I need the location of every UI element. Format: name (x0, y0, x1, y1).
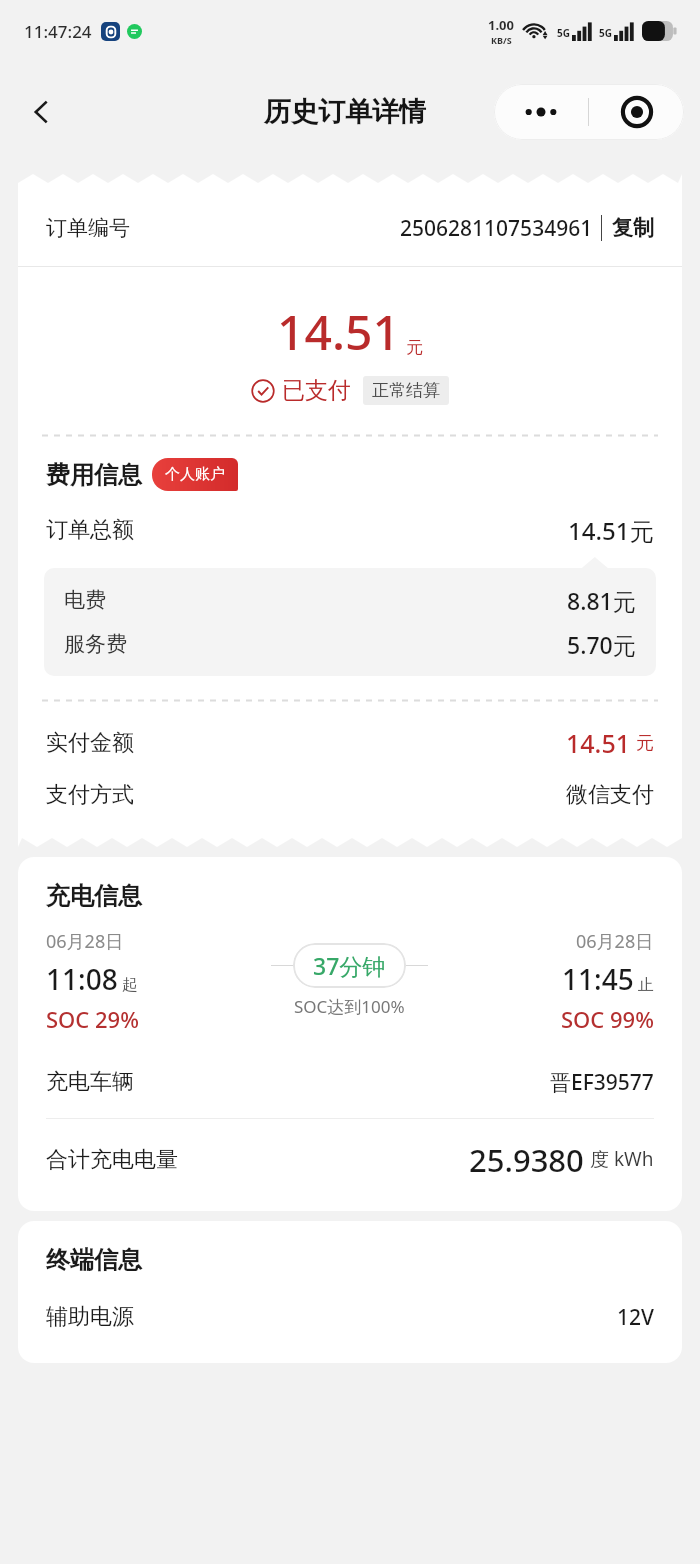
staticText: 元 (636, 732, 654, 755)
staticText: SOC 99% (561, 1004, 654, 1034)
staticText: 晋EF39577 (550, 1068, 654, 1097)
staticText: 06月28日 (576, 929, 654, 954)
staticText: 费用信息 (46, 460, 142, 490)
staticText: 正常结算 (372, 380, 440, 401)
staticText: 5.70元 (567, 629, 636, 660)
staticText: 充电车辆 (46, 1068, 134, 1096)
staticText: 电费 (64, 587, 106, 613)
staticText: 2506281107534961 (400, 214, 593, 243)
staticText: 复制 (612, 215, 654, 241)
staticText: 14.51元 (568, 514, 654, 547)
staticText: 06月28日 (46, 929, 124, 954)
staticText: SOC 29% (46, 1004, 139, 1034)
staticText: 度 kWh (590, 1146, 654, 1172)
staticText: 合计充电电量 (46, 1146, 178, 1174)
staticText: 服务费 (64, 631, 127, 657)
staticText: 辅助电源 (46, 1303, 134, 1331)
staticText: 历史订单详情 (264, 95, 426, 129)
staticText: 12V (617, 1303, 654, 1332)
staticText: 订单编号 (46, 215, 130, 241)
button[interactable]: Close (589, 84, 684, 140)
staticText: 实付金额 (46, 729, 134, 757)
button[interactable]: 复制 (612, 215, 654, 241)
staticText: 25.9380 (469, 1139, 584, 1181)
staticText: 充电信息 (46, 881, 142, 911)
staticText: 5G (557, 26, 570, 40)
staticText: 37分钟 (313, 950, 386, 981)
staticText: 订单总额 (46, 516, 134, 544)
staticText: 11:08 (46, 960, 118, 998)
staticText: 支付方式 (46, 781, 134, 809)
staticText: 14.51 (566, 726, 631, 760)
staticText: KB/S (491, 34, 512, 46)
staticText: 11:45 (562, 960, 634, 998)
staticText: 8.81元 (567, 585, 636, 616)
staticText: 11:47:24 (24, 20, 92, 43)
staticText: 1.00 (488, 16, 514, 34)
staticText: SOC达到100% (294, 995, 405, 1018)
staticText: 止 (638, 975, 654, 995)
staticText: 微信支付 (566, 781, 654, 809)
staticText: 终端信息 (46, 1245, 142, 1275)
button[interactable]: Back (14, 84, 70, 140)
staticText: 已支付 (282, 376, 351, 405)
staticText: 5G (599, 26, 612, 40)
staticText: 14.51 (277, 299, 400, 364)
staticText: 元 (406, 337, 423, 358)
staticText: 起 (122, 975, 138, 995)
staticText: 个人账户 (165, 465, 225, 484)
button[interactable]: More (494, 84, 588, 140)
